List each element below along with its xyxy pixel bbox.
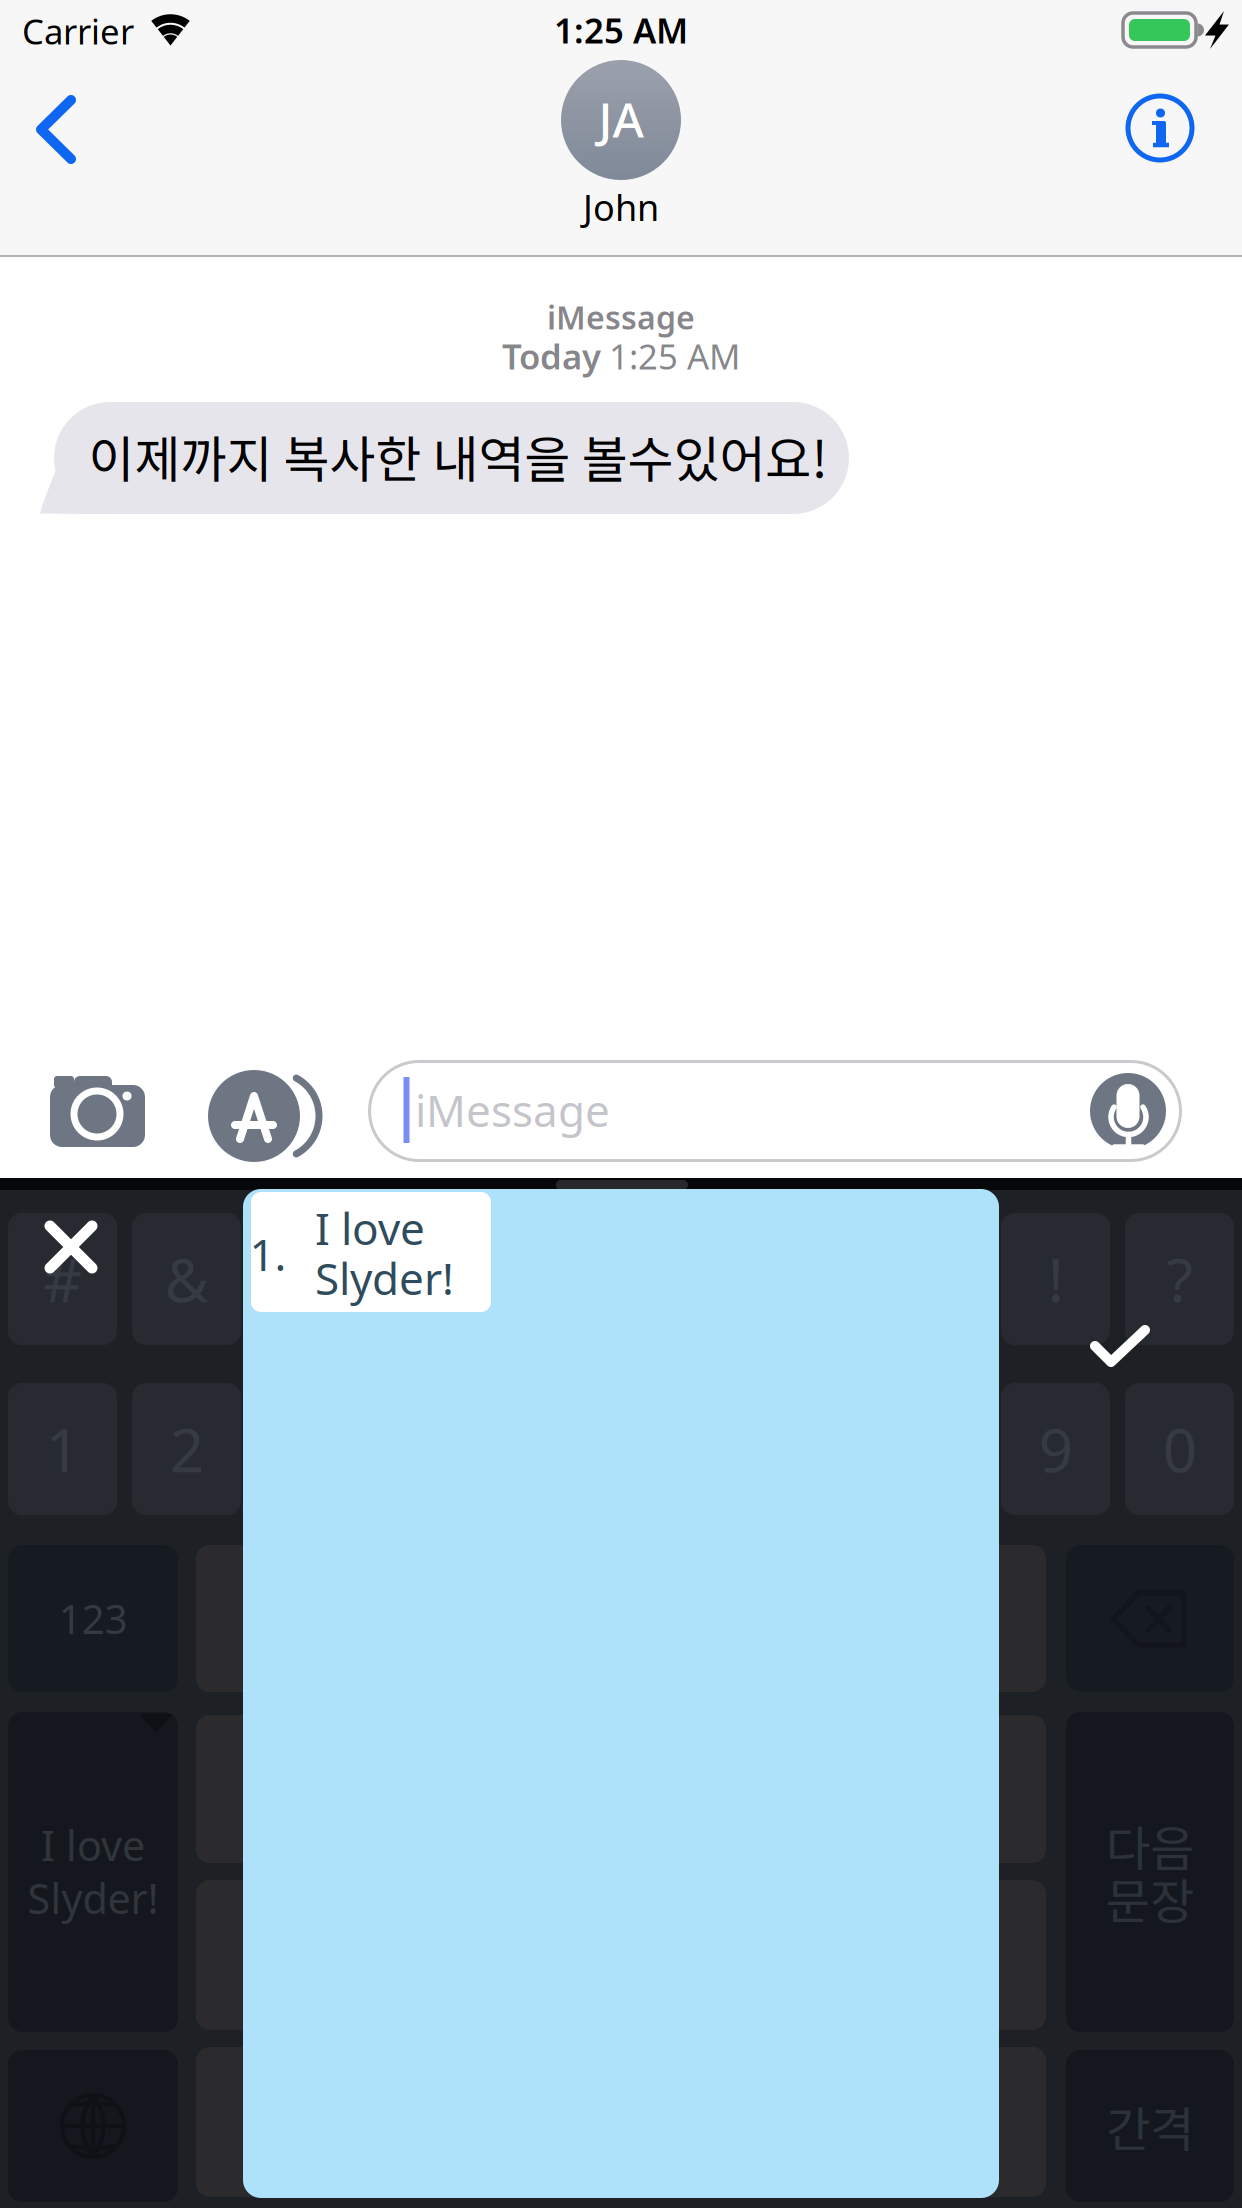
button[interactable]: ( [256,1213,365,1345]
button[interactable]: 123 [8,1545,178,1692]
button[interactable]: iMessage [368,1060,1182,1162]
button[interactable]: 0 [1125,1383,1234,1515]
staticText: Today [502,333,601,379]
staticText: iMessage [415,1081,610,1139]
staticText: I love [315,1199,425,1257]
button[interactable]: 9 [1001,1383,1110,1515]
button[interactable]: Close [40,1216,102,1278]
button[interactable]: 2 [132,1383,241,1515]
button[interactable]: ) [380,1213,489,1345]
staticText: 0 [1162,1409,1196,1489]
button[interactable]: iMessage apps [204,1062,324,1156]
button[interactable]: 다음 문장 [1066,1712,1234,2032]
staticText: & [165,1239,209,1319]
button[interactable]: Back [16,84,96,174]
staticText: 1:25 AM [609,333,740,379]
staticText: 다음 [1106,1810,1194,1880]
button[interactable]: key [196,1715,326,1863]
button[interactable]: Camera [40,1064,156,1156]
staticText: ) [426,1239,444,1319]
button[interactable]: key [916,1715,1046,1863]
button[interactable]: key [916,1880,1046,2030]
button[interactable]: key [916,1545,1046,1692]
button[interactable]: # [8,1213,117,1345]
staticText: ? [1166,1239,1192,1319]
button[interactable]: ? [1125,1213,1234,1345]
staticText: ! [1047,1239,1063,1319]
staticText: JA [598,87,643,151]
staticText: 1:25 AM [554,7,688,53]
button[interactable]: I love Slyder! [251,1192,491,1312]
staticText: Carrier [22,8,134,54]
staticText: 이제까지 복사한 내역을 볼수있어요! [88,420,827,492]
staticText: ( [302,1239,320,1319]
staticText: 123 [58,1592,127,1645]
staticText: 간격 [1106,2091,1194,2161]
button[interactable]: key [196,1880,326,2030]
staticText: # [43,1239,82,1319]
button[interactable]: ! [1001,1213,1110,1345]
staticText: 1 [45,1409,79,1489]
staticText: 1. [249,1225,286,1283]
staticText: 문장 [1106,1863,1194,1933]
staticText: iMessage [547,296,695,338]
button[interactable]: Info [1124,92,1196,164]
staticText: I love [41,1818,145,1872]
button[interactable]: 간격 [1066,2050,1234,2202]
staticText: 2 [170,1409,204,1489]
button[interactable]: Confirm [1090,1325,1150,1369]
staticText: John [583,183,659,231]
staticText: 9 [1038,1409,1072,1489]
button[interactable]: & [132,1213,241,1345]
button[interactable]: key [916,2047,1046,2197]
staticText: Slyder! [27,1871,158,1925]
button[interactable]: key [196,2047,326,2197]
button[interactable]: key [196,1545,326,1692]
button[interactable]: I love Slyder! [8,1712,178,2032]
staticText: Slyder! [315,1249,454,1307]
button[interactable]: Dictation [1086,1069,1170,1153]
